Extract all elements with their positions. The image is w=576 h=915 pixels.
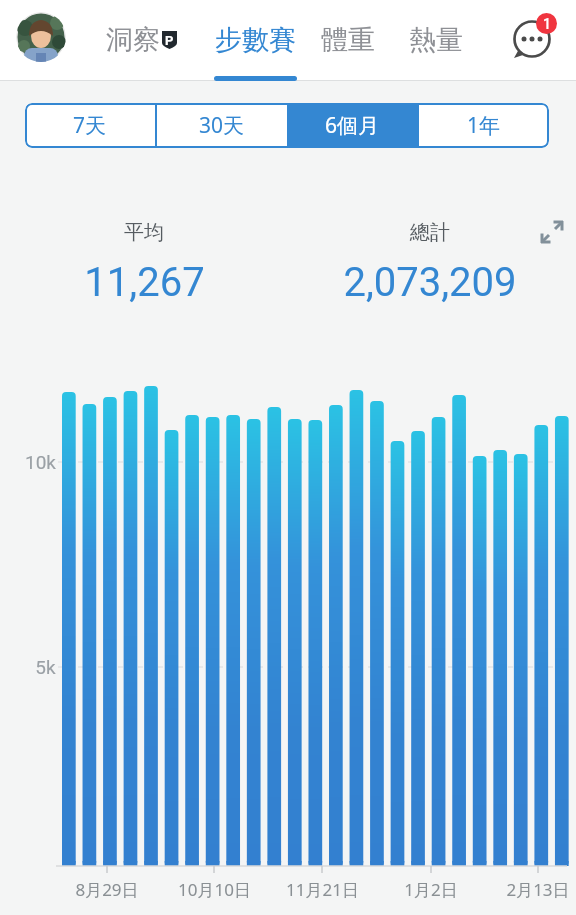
button[interactable]: 洞察 <box>100 0 166 80</box>
staticText: 2月13日 <box>506 878 570 901</box>
staticText: 6個月 <box>325 111 380 140</box>
staticText: 1年 <box>467 111 501 140</box>
staticText: 7天 <box>73 111 107 140</box>
staticText: 8月29日 <box>75 878 139 901</box>
staticText: 30天 <box>199 111 245 140</box>
button[interactable] <box>16 12 66 62</box>
button[interactable]: 6個月 <box>287 103 417 148</box>
button[interactable]: 7天 <box>25 103 155 148</box>
staticText: 2,073,209 <box>343 259 517 306</box>
staticText: 體重 <box>321 23 375 57</box>
button[interactable]: 熱量 <box>396 0 476 80</box>
button[interactable] <box>510 17 558 65</box>
staticText: 10k <box>25 451 56 473</box>
staticText: 平均 <box>124 220 164 245</box>
staticText: 1 <box>543 16 551 32</box>
button[interactable]: 1年 <box>419 103 549 148</box>
staticText: 總計 <box>410 220 450 245</box>
button[interactable] <box>538 218 566 246</box>
staticText: 熱量 <box>409 23 463 57</box>
staticText: 洞察 <box>106 23 160 57</box>
staticText: 5k <box>35 656 56 678</box>
staticText: 步數賽 <box>215 23 296 57</box>
button[interactable]: 步數賽 <box>210 0 300 80</box>
staticText: 10月10日 <box>178 878 251 901</box>
staticText: 11月21日 <box>286 878 359 901</box>
button[interactable]: 30天 <box>157 103 287 148</box>
staticText: 1月2日 <box>404 878 458 901</box>
staticText: P <box>165 33 174 48</box>
button[interactable]: 體重 <box>308 0 388 80</box>
staticText: 11,267 <box>84 259 205 306</box>
button[interactable]: 1 <box>536 13 557 34</box>
